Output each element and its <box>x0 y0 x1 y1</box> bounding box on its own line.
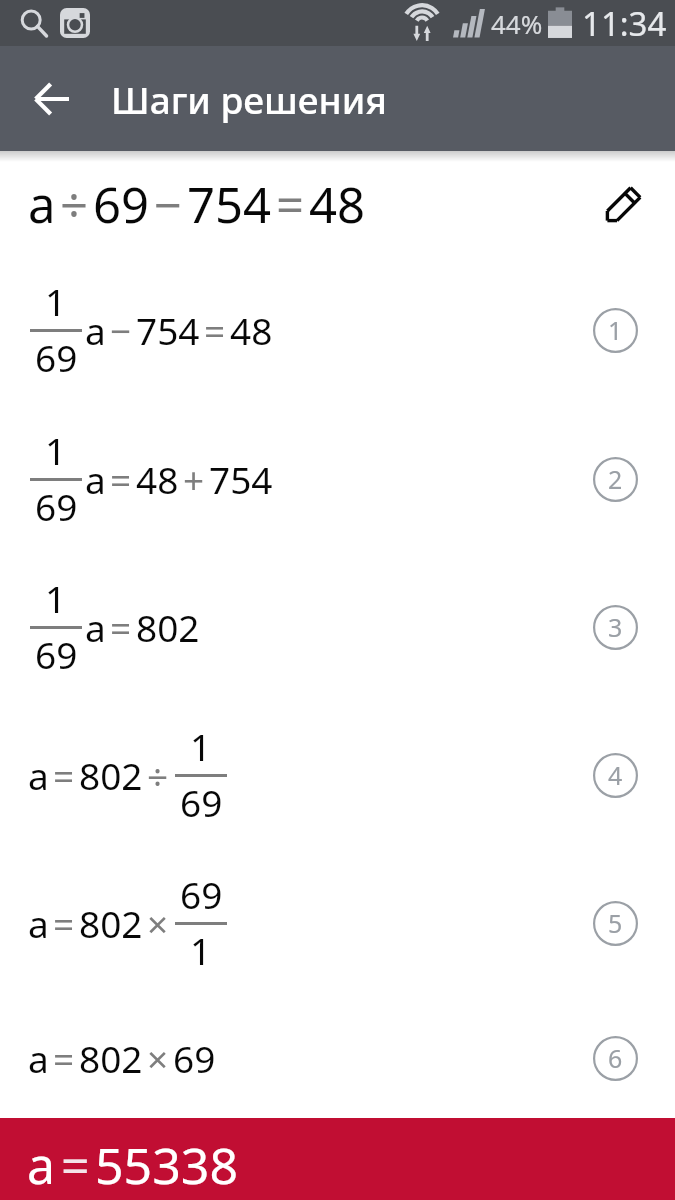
staticText: 802 <box>79 898 143 948</box>
staticText: 6 <box>608 1041 623 1075</box>
button[interactable]: 3 <box>587 599 643 655</box>
staticText: = <box>53 750 75 800</box>
staticText: a <box>28 1033 49 1083</box>
button[interactable]: Search <box>16 6 50 40</box>
staticText: = <box>61 1131 90 1199</box>
staticText: 2 <box>608 462 623 496</box>
staticText: = <box>53 1033 75 1083</box>
staticText: 44% <box>491 6 543 41</box>
button[interactable]: Back <box>20 67 84 131</box>
button[interactable]: a <box>0 984 675 1132</box>
button[interactable]: 4 <box>587 747 643 803</box>
staticText: × <box>147 1033 169 1083</box>
staticText: 1 <box>190 925 212 975</box>
staticText: 69 <box>173 1033 216 1083</box>
button[interactable]: a <box>0 849 675 997</box>
staticText: 754 <box>209 454 273 504</box>
staticText: a <box>28 171 56 238</box>
staticText: 69 <box>35 629 78 679</box>
staticText: 1 <box>45 573 67 623</box>
staticText: a <box>85 305 106 355</box>
staticText: a <box>27 1131 56 1199</box>
button[interactable]: a <box>0 151 675 258</box>
staticText: a <box>85 454 106 504</box>
staticText: 69 <box>93 171 150 238</box>
staticText: 5 <box>608 906 623 940</box>
staticText: 55338 <box>95 1131 238 1199</box>
button[interactable]: a <box>0 701 675 849</box>
staticText: − <box>154 171 183 238</box>
button[interactable]: Edit <box>599 177 651 229</box>
staticText: − <box>110 305 132 355</box>
staticText: 1 <box>608 313 623 347</box>
staticText: a <box>28 898 49 948</box>
staticText: = <box>110 454 132 504</box>
staticText: 69 <box>180 869 223 919</box>
staticText: 802 <box>79 750 143 800</box>
button[interactable]: 1 <box>0 553 675 701</box>
button[interactable]: Camera <box>58 6 92 40</box>
staticText: 4 <box>608 758 623 792</box>
staticText: a <box>28 750 49 800</box>
staticText: = <box>276 171 305 238</box>
staticText: 1 <box>45 276 67 326</box>
staticText: × <box>147 898 169 948</box>
staticText: ÷ <box>60 171 89 238</box>
staticText: 754 <box>136 305 200 355</box>
staticText: = <box>110 602 132 652</box>
button[interactable]: 1 <box>587 302 643 358</box>
button[interactable]: 2 <box>587 451 643 507</box>
button[interactable]: 1 <box>0 405 675 553</box>
staticText: ÷ <box>147 750 169 800</box>
staticText: 69 <box>35 481 78 531</box>
staticText: 1 <box>45 425 67 475</box>
staticText: 754 <box>187 171 272 238</box>
staticText: 1 <box>190 721 212 771</box>
button[interactable]: a <box>0 1118 675 1200</box>
staticText: 69 <box>35 332 78 382</box>
staticText: = <box>53 898 75 948</box>
button[interactable]: 6 <box>587 1030 643 1086</box>
staticText: = <box>204 305 226 355</box>
button[interactable]: 1 <box>0 256 675 404</box>
staticText: 48 <box>309 171 366 238</box>
staticText: 802 <box>79 1033 143 1083</box>
staticText: 802 <box>136 602 200 652</box>
staticText: Шаги решения <box>111 74 387 124</box>
staticText: 3 <box>608 610 623 644</box>
staticText: a <box>85 602 106 652</box>
staticText: 11:34 <box>582 1 667 46</box>
staticText: 69 <box>180 777 223 827</box>
button[interactable]: 5 <box>587 895 643 951</box>
staticText: 48 <box>230 305 273 355</box>
staticText: 48 <box>136 454 179 504</box>
staticText: + <box>183 454 205 504</box>
